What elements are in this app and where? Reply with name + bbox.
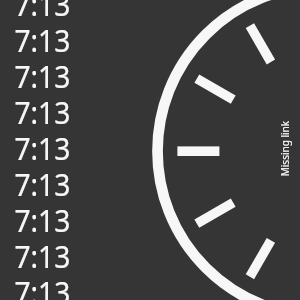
button[interactable]: Analog clock face <box>0 0 300 300</box>
